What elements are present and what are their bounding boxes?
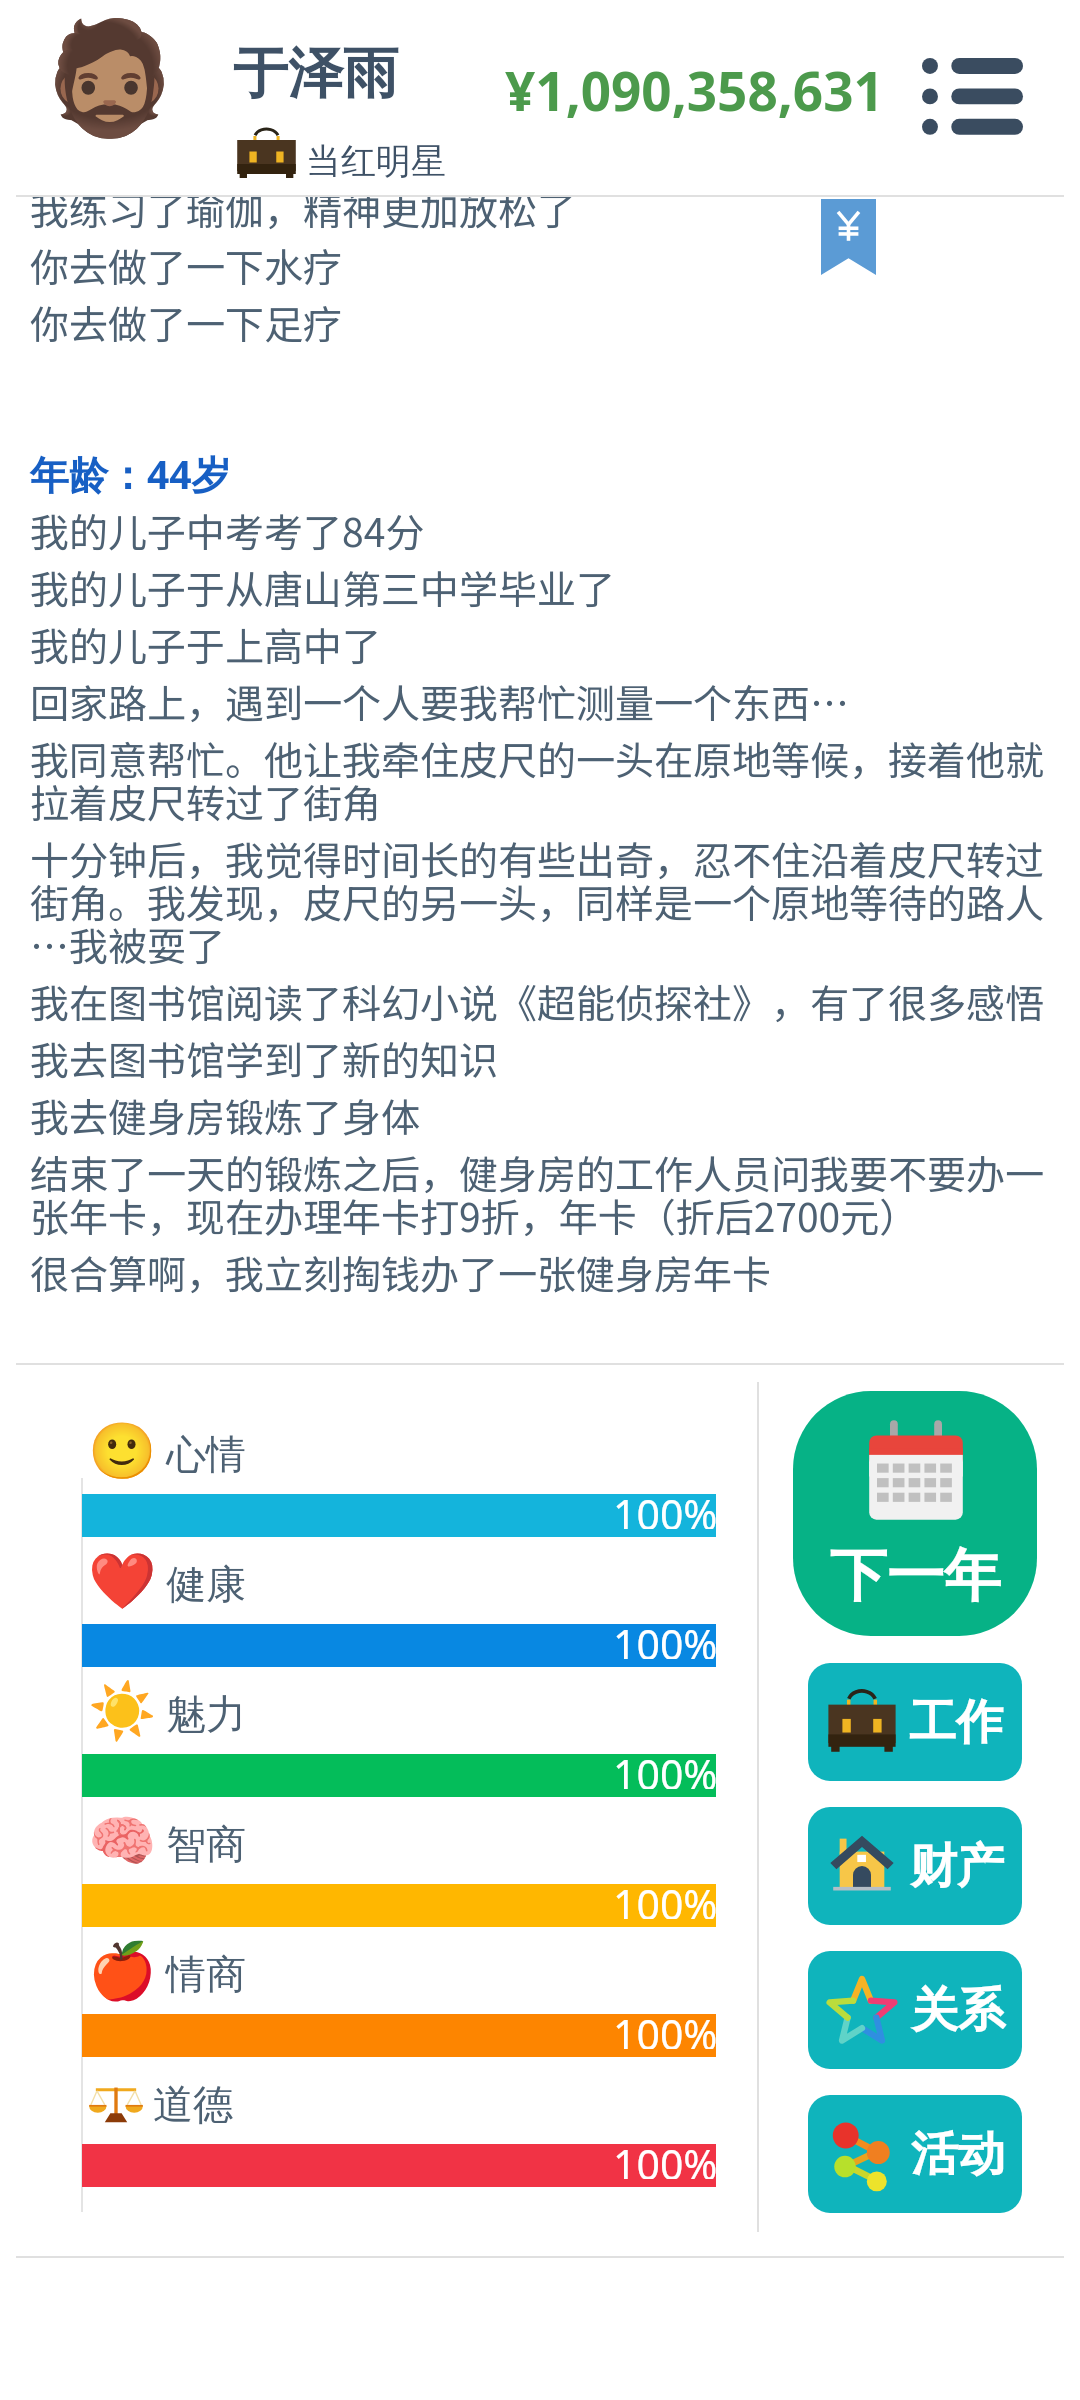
staticText: 健康: [166, 1559, 246, 1609]
button[interactable]: 下一年: [793, 1391, 1037, 1636]
staticText: 100%: [613, 1876, 718, 1919]
staticText: ¥1,090,358,631: [505, 54, 884, 126]
staticText: 🧠: [88, 1809, 157, 1873]
staticText: 工作: [909, 1693, 1003, 1752]
staticText: ❤: [88, 1549, 157, 1613]
staticText: 100%: [613, 1746, 718, 1789]
staticText: 你去做了一下足疗: [30, 305, 343, 348]
staticText: 100%: [613, 2006, 718, 2049]
button[interactable]: 财产: [808, 1807, 1022, 1925]
staticText: 100%: [613, 2136, 718, 2179]
staticText: 你去做了一下水疗: [30, 248, 343, 291]
button[interactable]: Menu: [910, 38, 1035, 153]
staticText: 🍎: [88, 1939, 157, 2003]
staticText: 十分钟后，我觉得时间长的有些出奇，忍不住沿着皮尺转过街角。我发现，皮尺的另一头，…: [30, 841, 1066, 970]
staticText: 我的儿子于从唐山第三中学毕业了: [30, 570, 616, 613]
button[interactable]: 工作: [808, 1663, 1022, 1781]
staticText: 我的儿子中考考了84分: [30, 513, 425, 556]
staticText: 下一年: [830, 1540, 1001, 1612]
button[interactable]: 关系: [808, 1951, 1022, 2069]
staticText: 年龄：44岁: [30, 447, 231, 500]
staticText: 🧔🏽: [41, 14, 178, 143]
staticText: 我练习了瑜伽，精神更加放松了: [30, 197, 577, 234]
staticText: 我同意帮忙。他让我牵住皮尺的一头在原地等候，接着他就拉着皮尺转过了街角: [30, 741, 1066, 827]
staticText: 回家路上，遇到一个人要我帮忙测量一个东西…: [30, 684, 850, 727]
staticText: 心情: [166, 1429, 246, 1479]
staticText: 我的儿子于上高中了: [30, 627, 382, 670]
staticText: 🙂: [88, 1419, 157, 1483]
staticText: 情商: [166, 1949, 246, 1999]
staticText: 我去图书馆学到了新的知识: [30, 1041, 499, 1084]
staticText: 道德: [153, 2079, 233, 2129]
staticText: 100%: [613, 1616, 718, 1659]
staticText: 于泽雨: [233, 39, 398, 108]
button[interactable]: 活动: [808, 2095, 1022, 2213]
staticText: 我在图书馆阅读了科幻小说《超能侦探社》，有了很多感悟: [30, 984, 1045, 1027]
staticText: 财产: [910, 1837, 1004, 1896]
staticText: 我去健身房锻炼了身体: [30, 1098, 421, 1141]
staticText: 活动: [911, 2125, 1005, 2184]
staticText: 魅力: [166, 1689, 246, 1739]
staticText: 当红明星: [306, 139, 446, 183]
staticText: ☀: [88, 1679, 157, 1743]
staticText: 100%: [613, 1486, 718, 1529]
staticText: 很合算啊，我立刻掏钱办了一张健身房年卡: [30, 1255, 772, 1298]
staticText: 智商: [166, 1819, 246, 1869]
staticText: 关系: [911, 1981, 1005, 2040]
staticText: 结束了一天的锻炼之后，健身房的工作人员问我要不要办一张年卡，现在办理年卡打9折，…: [30, 1155, 1066, 1241]
